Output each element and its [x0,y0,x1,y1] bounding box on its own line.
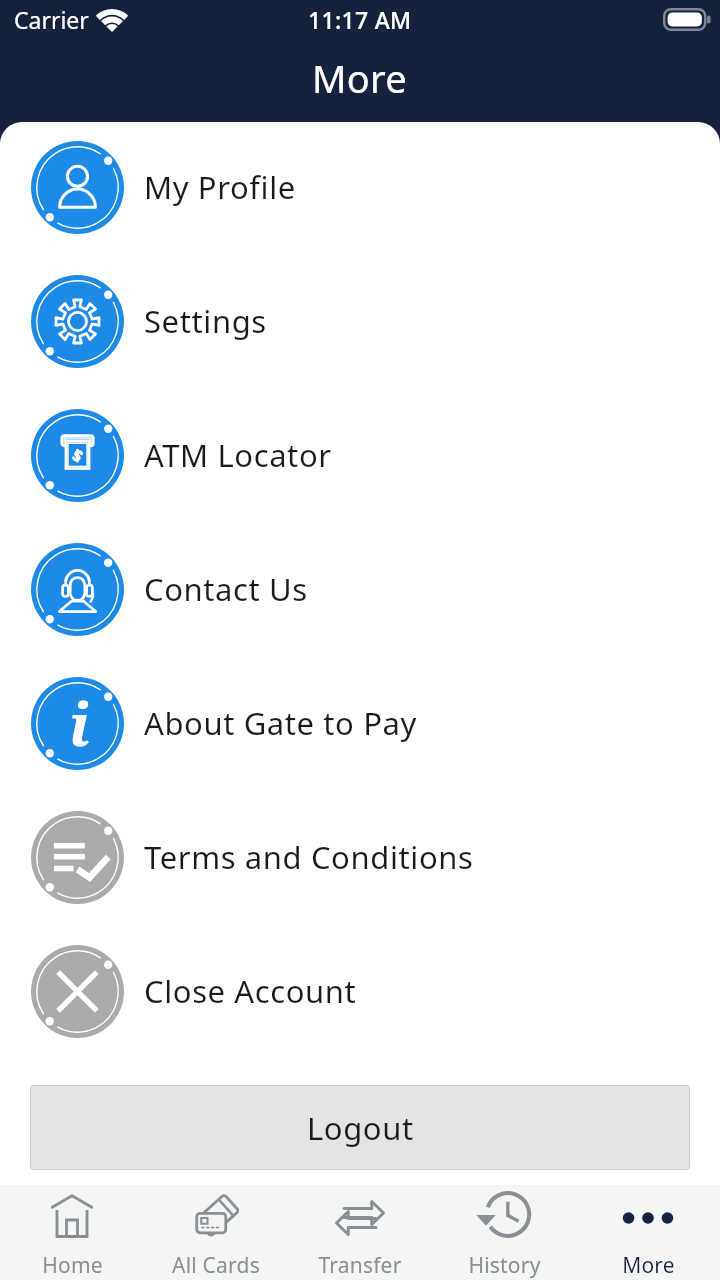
button[interactable]: Settings [0,254,720,388]
button[interactable]: Close Account [0,924,720,1058]
staticText: More [312,52,408,104]
staticText: Contact Us [144,568,308,610]
staticText: My Profile [144,166,296,208]
staticText: Home [42,1251,103,1280]
button[interactable]: All Cards [144,1185,288,1280]
button[interactable]: i [0,656,720,790]
button[interactable]: Terms and Conditions [0,790,720,924]
staticText: History [468,1251,541,1280]
staticText: Terms and Conditions [144,836,474,878]
staticText: More [622,1251,675,1280]
staticText: About Gate to Pay [144,702,417,744]
button[interactable]: Contact Us [0,522,720,656]
button[interactable]: History [432,1185,576,1280]
staticText: Logout [307,1107,414,1149]
button[interactable]: Logout [30,1085,690,1170]
staticText: i [69,684,90,763]
staticText: All Cards [172,1251,260,1280]
button[interactable]: Home [0,1185,144,1280]
staticText: Carrier [14,4,89,35]
staticText: Settings [144,300,267,342]
button[interactable]: ATM Locator [0,388,720,522]
staticText: 11:17 AM [308,4,412,35]
staticText: Transfer [318,1251,402,1280]
staticText: Close Account [144,970,357,1012]
button[interactable]: My Profile [0,122,720,254]
button[interactable]: More [576,1185,720,1280]
button[interactable]: Transfer [288,1185,432,1280]
staticText: ATM Locator [144,434,332,476]
